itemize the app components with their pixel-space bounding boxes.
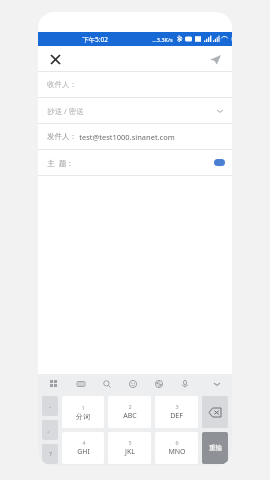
button[interactable]: ? [42,444,58,464]
button[interactable]: 抄送 / 密送 [38,98,232,123]
button[interactable]: Emoji [125,376,141,392]
button[interactable]: 1 [62,396,104,428]
staticText: ? [49,450,52,458]
staticText: test@test1000.sinanet.com [79,132,175,142]
button[interactable]: Collapse keyboard [209,376,225,392]
button[interactable]: Apps [46,376,62,392]
button[interactable]: Backspace [202,396,228,428]
staticText: 下午5:02 [82,35,108,44]
staticText: 发件人： [47,132,77,141]
staticText: 6 [175,439,179,446]
staticText: 重输 [209,444,222,452]
staticText: 3 [175,403,179,410]
button[interactable]: 主 题： [38,150,232,175]
button[interactable]: 发件人： [38,124,232,149]
button[interactable]: Search [99,376,115,392]
button[interactable]: Close [44,48,66,70]
staticText: 1 [81,404,85,411]
button[interactable]: Settings [151,376,167,392]
button[interactable]: 3 [155,396,198,428]
staticText: MNO [168,447,186,457]
button[interactable]: Attach [214,159,225,166]
staticText: DEF [170,411,183,421]
staticText: , [49,402,51,410]
button[interactable]: 6 [155,432,198,464]
staticText: 。 [47,426,53,434]
button[interactable]: 2 [108,396,151,428]
staticText: ABC [123,411,137,421]
staticText: 收件人： [47,80,77,89]
button[interactable]: Keyboard [73,376,89,392]
staticText: 4 [82,439,86,446]
staticText: GHI [77,447,90,457]
staticText: 5 [128,439,132,446]
staticText: ...3.3K/s [152,36,173,43]
staticText: 抄送 / 密送 [47,106,84,116]
button[interactable]: 4 [62,432,104,464]
button[interactable]: Send [203,47,227,71]
staticText: JKL [125,447,135,457]
staticText: 主 题： [47,158,74,168]
staticText: 分词 [76,412,90,421]
staticText: 2 [128,403,132,410]
button[interactable]: 收件人： [38,72,232,97]
button[interactable]: Voice [177,376,193,392]
button[interactable]: 5 [108,432,151,464]
button[interactable]: 重输 [202,432,228,464]
